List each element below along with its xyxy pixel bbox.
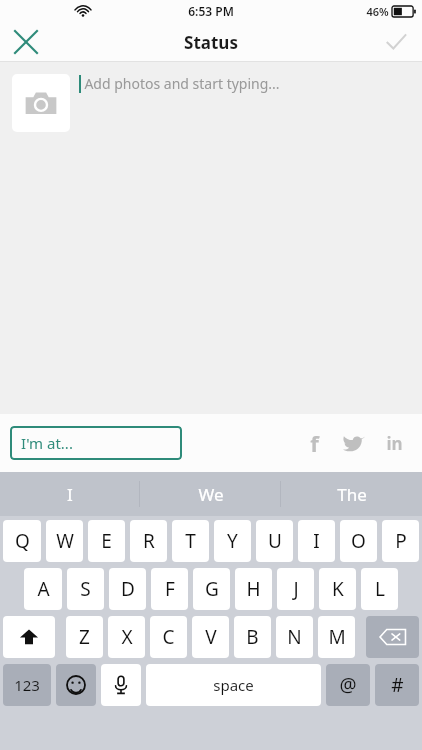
button[interactable]: space [146,664,321,706]
button[interactable]: T [172,520,209,562]
button[interactable]: I'm at... [10,426,182,460]
staticText: X [121,624,133,650]
button[interactable]: W [46,520,83,562]
button[interactable]: Share to LinkedIn [374,423,414,463]
staticText: @ [339,672,357,698]
staticText: 123 [14,675,40,695]
staticText: # [391,672,404,698]
button[interactable]: H [235,568,272,610]
staticText: J [293,576,299,602]
staticText: I'm at... [21,433,73,453]
staticText: D [121,576,135,602]
staticText: U [268,528,282,554]
button[interactable]: Emoji [56,664,96,706]
button[interactable]: Add photos and start typing... [84,74,422,134]
staticText: E [101,528,112,554]
button[interactable]: X [108,616,145,658]
button[interactable]: O [340,520,377,562]
button[interactable]: F [151,568,188,610]
staticText: Z [79,624,90,650]
button[interactable]: S [67,568,104,610]
button[interactable]: I [0,472,140,516]
staticText: space [213,675,254,695]
button[interactable]: D [109,568,146,610]
staticText: Y [227,528,238,554]
staticText: I [313,528,320,554]
button[interactable]: E [88,520,125,562]
button[interactable]: L [361,568,398,610]
button[interactable]: Share to Twitter [334,423,374,463]
staticText: Q [15,528,30,554]
staticText: M [328,624,346,650]
staticText: 6:53 PM [188,3,234,19]
button[interactable]: Voice input [101,664,141,706]
button[interactable]: R [130,520,167,562]
staticText: R [143,528,155,554]
staticText: T [185,528,196,554]
staticText: Status [184,31,238,54]
staticText: P [395,528,407,554]
staticText: Add photos and start typing... [84,74,280,93]
button[interactable]: Post status [370,22,422,62]
button[interactable]: B [234,616,271,658]
staticText: N [287,624,302,650]
staticText: H [246,576,261,602]
staticText: S [80,576,91,602]
button[interactable]: Y [214,520,251,562]
button[interactable]: Backspace [366,616,419,658]
button[interactable]: @ [326,664,370,706]
button[interactable]: Q [3,520,41,562]
staticText: O [351,528,366,554]
staticText: A [37,576,50,602]
button[interactable]: G [193,568,230,610]
staticText: We [198,483,224,506]
button[interactable]: Z [66,616,103,658]
button[interactable]: P [382,520,419,562]
button[interactable]: 123 [3,664,51,706]
button[interactable]: I [298,520,335,562]
button[interactable]: Shift [3,616,55,658]
staticText: F [165,576,175,602]
staticText: in [386,432,403,455]
staticText: The [337,483,367,506]
button[interactable]: N [276,616,313,658]
button[interactable]: K [319,568,356,610]
staticText: B [246,624,259,650]
staticText: I [67,483,73,506]
button[interactable]: U [256,520,293,562]
staticText: W [56,528,74,554]
button[interactable]: Share to Facebook [294,423,334,463]
button[interactable]: M [318,616,355,658]
button[interactable]: The [281,472,422,516]
button[interactable]: # [375,664,419,706]
staticText: C [162,624,175,650]
staticText: G [205,576,219,602]
button[interactable]: Close [0,22,52,62]
button[interactable]: C [150,616,187,658]
button[interactable]: We [140,472,281,516]
staticText: L [375,576,385,602]
button[interactable]: J [277,568,314,610]
button[interactable]: A [24,568,62,610]
staticText: f [310,428,319,458]
staticText: K [332,576,344,602]
staticText: V [205,624,217,650]
button[interactable]: Add photos [12,74,70,132]
button[interactable]: V [192,616,229,658]
staticText: 46% [366,4,389,19]
